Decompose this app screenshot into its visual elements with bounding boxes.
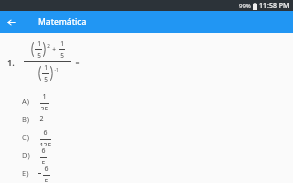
button[interactable]: C) bbox=[0, 128, 293, 146]
staticText: 2 bbox=[39, 114, 44, 124]
staticText: 1 bbox=[60, 39, 64, 48]
button[interactable]: B) bbox=[0, 110, 293, 128]
staticText: 1 bbox=[44, 63, 48, 72]
staticText: 5 bbox=[44, 75, 48, 84]
staticText: 5 bbox=[44, 177, 49, 182]
staticText: 1 bbox=[37, 39, 41, 48]
staticText: D) bbox=[22, 150, 30, 160]
staticText: 5 bbox=[60, 51, 64, 60]
staticText: B) bbox=[22, 114, 30, 124]
staticText: = bbox=[75, 58, 80, 68]
staticText: E) bbox=[22, 168, 29, 178]
button[interactable]: Back bbox=[0, 11, 22, 33]
staticText: 1 bbox=[42, 92, 47, 102]
staticText: 6 bbox=[43, 128, 48, 138]
staticText: -1 bbox=[54, 67, 59, 73]
staticText: 6 bbox=[41, 146, 46, 156]
button[interactable]: D) bbox=[0, 146, 293, 164]
staticText: 99% bbox=[239, 2, 251, 10]
staticText: 1. bbox=[7, 56, 15, 68]
staticText: 2 bbox=[47, 43, 50, 49]
button[interactable]: A) bbox=[0, 92, 293, 110]
button[interactable]: E) bbox=[0, 164, 293, 182]
staticText: Matemática bbox=[38, 16, 87, 28]
staticText: C) bbox=[22, 132, 29, 142]
staticText: 5 bbox=[37, 51, 41, 60]
staticText: 5 bbox=[41, 159, 46, 164]
staticText: A) bbox=[22, 96, 30, 106]
staticText: 6 bbox=[44, 164, 49, 174]
staticText: + bbox=[52, 45, 56, 54]
staticText: 125 bbox=[39, 141, 52, 146]
staticText: 25 bbox=[40, 105, 49, 110]
staticText: 11:58 PM bbox=[259, 1, 290, 11]
